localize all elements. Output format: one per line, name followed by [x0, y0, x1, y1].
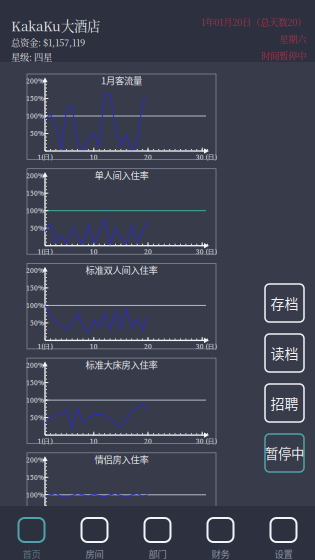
staticText: 10	[90, 152, 98, 162]
staticText: 10	[90, 342, 98, 351]
staticText: 100%	[26, 301, 44, 310]
staticText: 20	[144, 342, 152, 351]
staticText: 150%	[26, 378, 44, 387]
staticText: 50%	[30, 413, 44, 422]
staticText: 1(日)	[37, 152, 52, 162]
staticText: 200%	[26, 266, 44, 275]
staticText: 标准双人间入住率	[85, 263, 157, 276]
button[interactable]: 暂停中	[265, 434, 304, 472]
staticText: 读档	[270, 343, 298, 363]
staticText: 100%	[26, 206, 44, 215]
staticText: 150%	[26, 189, 44, 198]
button[interactable]: 财务	[189, 506, 252, 560]
staticText: 150%	[26, 94, 44, 103]
button[interactable]: 存档	[265, 284, 304, 322]
staticText: 情侣房入住率	[94, 452, 148, 466]
staticText: 标准大床房入住率	[85, 358, 157, 371]
staticText: 设置	[274, 547, 292, 560]
staticText: 10	[90, 437, 98, 446]
staticText: KakaKu大酒店	[11, 16, 100, 35]
staticText: 50%	[30, 129, 44, 138]
staticText: 100%	[26, 396, 44, 405]
staticText: 100%	[26, 490, 44, 499]
staticText: 30 (日)	[196, 531, 217, 540]
staticText: 50%	[30, 224, 44, 233]
staticText: 暂停中	[265, 443, 304, 463]
staticText: 30 (日)	[196, 437, 217, 446]
staticText: 财务	[211, 547, 229, 560]
staticText: 招聘	[270, 393, 298, 413]
staticText: 200%	[26, 171, 44, 180]
staticText: 房间	[85, 547, 103, 560]
button[interactable]: 招聘	[265, 384, 304, 422]
staticText: 1(日)	[37, 437, 52, 446]
button[interactable]: 读档	[265, 334, 304, 372]
staticText: 50%	[30, 318, 44, 327]
staticText: 150%	[26, 283, 44, 292]
staticText: 20	[144, 531, 152, 540]
staticText: 1(日)	[37, 531, 52, 540]
button[interactable]: 首页	[0, 506, 63, 560]
staticText: 首页	[22, 547, 40, 560]
staticText: 30 (日)	[196, 152, 217, 162]
staticText: 30 (日)	[196, 247, 217, 256]
staticText: 1年01月20日（总天数20）	[201, 15, 306, 28]
staticText: 1(日)	[37, 342, 52, 351]
staticText: 20	[144, 152, 152, 162]
staticText: 150%	[26, 473, 44, 482]
button[interactable]: 部门	[126, 506, 189, 560]
staticText: 星级: 四星	[11, 50, 52, 63]
staticText: 10	[90, 247, 98, 256]
staticText: 1(日)	[37, 247, 52, 256]
staticText: 30 (日)	[196, 342, 217, 351]
staticText: 200%	[26, 455, 44, 464]
staticText: 20	[144, 247, 152, 256]
staticText: 星期六	[279, 32, 306, 45]
staticText: 总资金: $1,157,119	[11, 35, 85, 49]
button[interactable]: 房间	[63, 506, 126, 560]
staticText: 100%	[26, 111, 44, 121]
staticText: 20	[144, 437, 152, 446]
staticText: 200%	[26, 361, 44, 370]
staticText: 200%	[26, 76, 44, 86]
staticText: 1月客流量	[101, 73, 142, 87]
staticText: 单人间入住率	[94, 168, 148, 182]
button[interactable]: 设置	[252, 506, 315, 560]
staticText: 存档	[270, 293, 298, 313]
staticText: 部门	[148, 547, 166, 560]
staticText: 时间暂停中	[261, 49, 306, 62]
